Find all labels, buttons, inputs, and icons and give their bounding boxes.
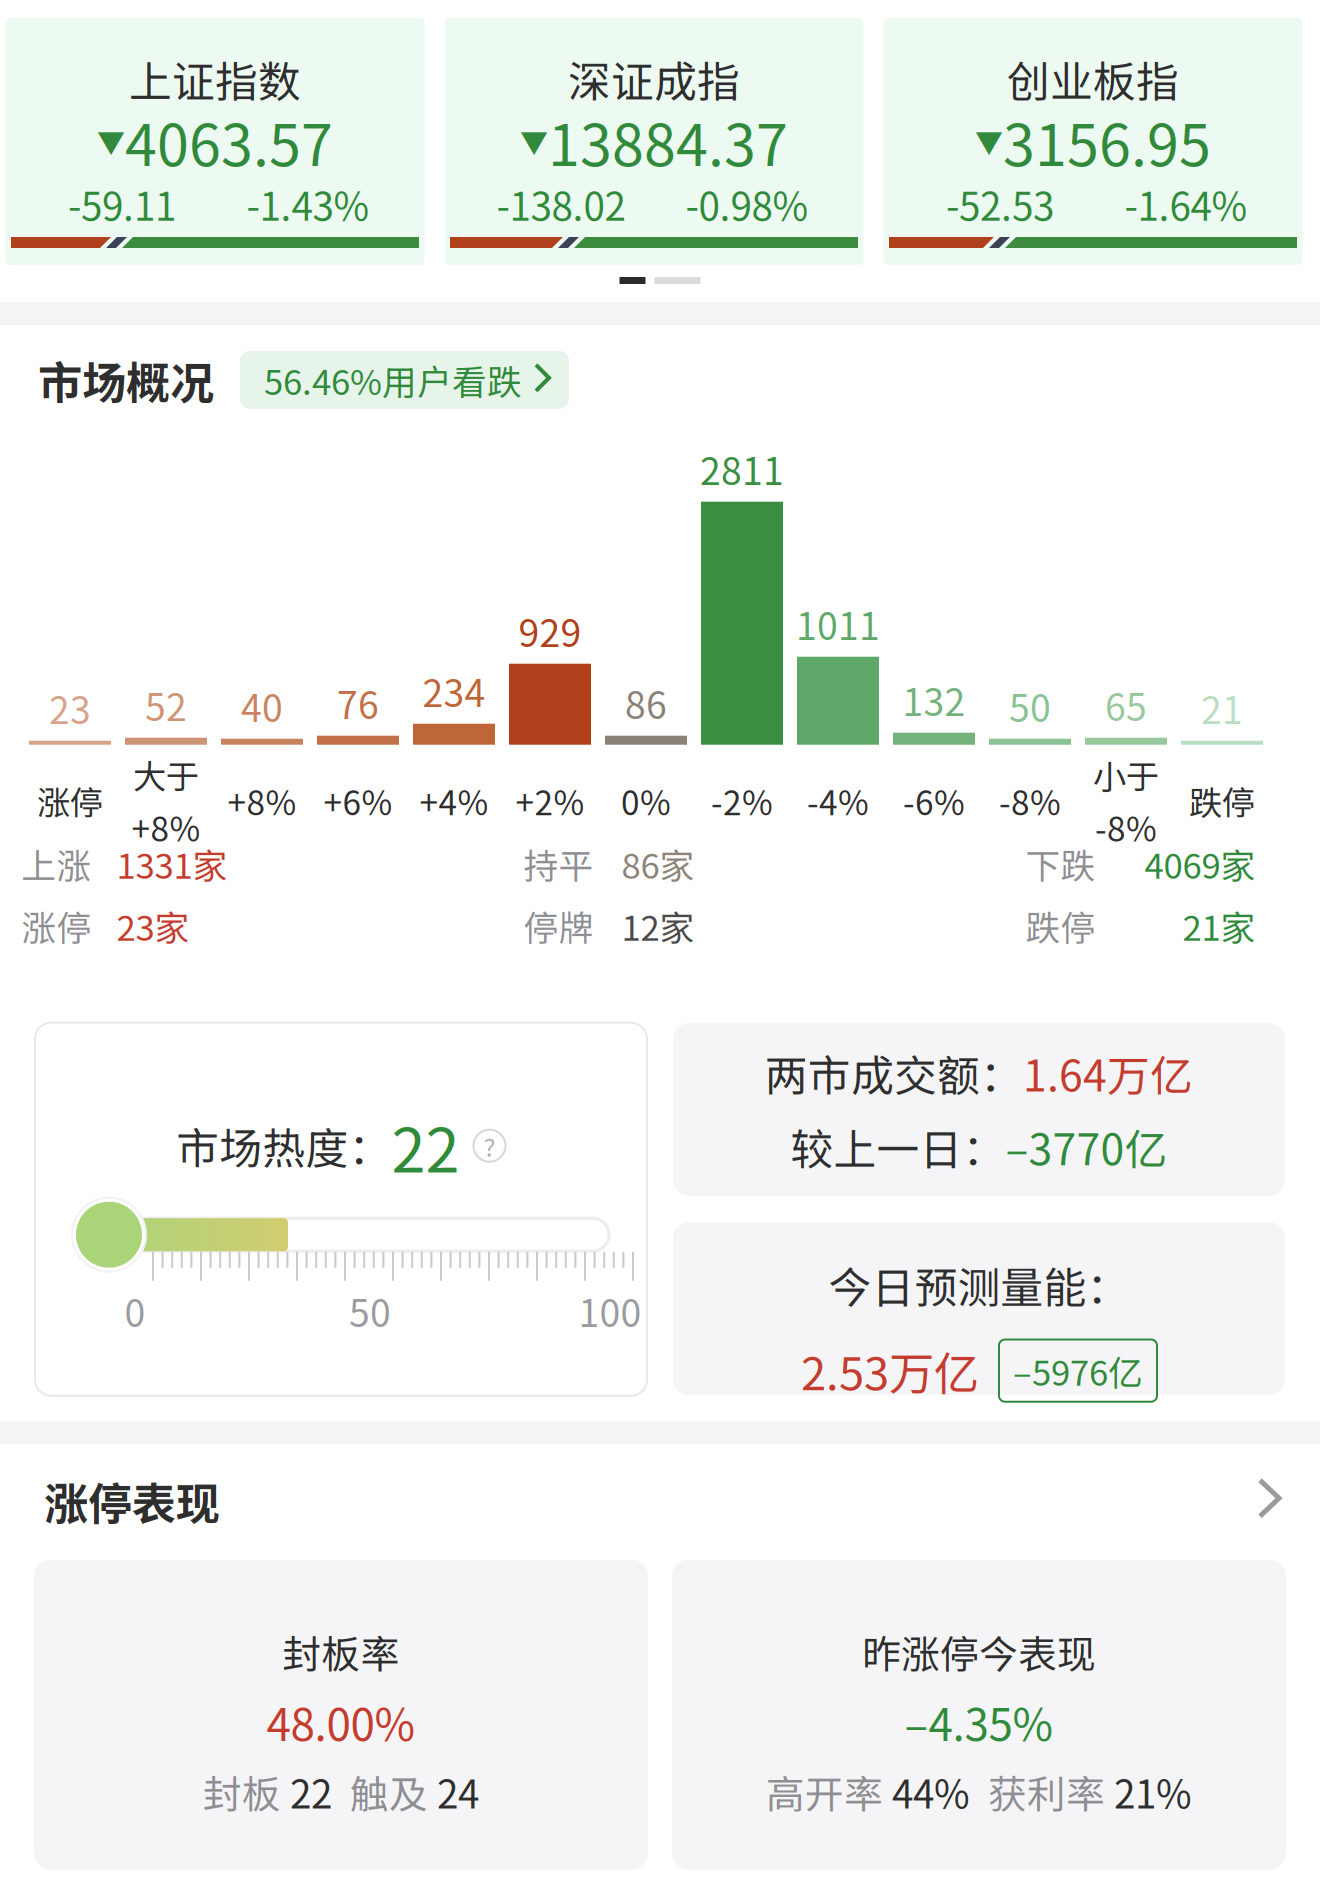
staticText: +6% (323, 777, 392, 825)
staticText: 上涨 (21, 839, 91, 889)
staticText: -4% (807, 777, 869, 825)
staticText: 涨停表现 (44, 1469, 220, 1533)
staticText: 封板率 (282, 1624, 399, 1680)
staticText: -52.53 (946, 176, 1054, 232)
staticText: 2811 (700, 442, 784, 496)
staticText: 132 (902, 673, 965, 727)
staticText: 获利率 (988, 1764, 1105, 1820)
button[interactable]: 上证指数 (5, 18, 424, 265)
staticText: 50 (1009, 679, 1051, 733)
staticText: 停牌 (523, 901, 593, 951)
staticText: 0% (621, 777, 671, 825)
staticText: 21% (1114, 1764, 1192, 1820)
staticText: 234 (422, 664, 485, 718)
staticText: –4.35% (904, 1690, 1053, 1754)
staticText: 21 (1201, 681, 1243, 735)
staticText: 持平 (523, 839, 593, 889)
staticText: ▼ (975, 121, 1003, 161)
staticText: -1.43% (246, 176, 369, 232)
staticText: 涨停 (21, 901, 91, 951)
staticText: 65 (1105, 678, 1147, 732)
staticText: 21家 (1182, 901, 1255, 951)
staticText: 深证成指 (568, 48, 740, 110)
staticText: 1.64万亿 (1023, 1042, 1193, 1104)
staticText: +8% (131, 803, 200, 851)
staticText: -6% (903, 777, 965, 825)
staticText: 50 (349, 1284, 391, 1338)
staticText: ▼ (520, 121, 548, 161)
staticText: 48.00% (266, 1690, 415, 1754)
staticText: 下跌 (1025, 839, 1095, 889)
staticText: 4063.57 (125, 99, 333, 182)
staticText: -0.98% (685, 176, 808, 232)
staticText: 12家 (621, 901, 694, 951)
staticText: 76 (337, 676, 379, 730)
staticText: 跌停 (1189, 777, 1255, 825)
staticText: 40 (241, 679, 283, 733)
staticText: 高开率 (766, 1764, 883, 1820)
button[interactable]: 56.46%用户看跌 (240, 351, 569, 409)
staticText: 创业板指 (1007, 48, 1179, 110)
staticText: 封板 (203, 1764, 281, 1820)
staticText: 929 (518, 604, 581, 658)
staticText: 两市成交额： (765, 1042, 1023, 1104)
staticText: 100 (578, 1284, 641, 1338)
staticText: 22 (290, 1764, 332, 1820)
staticText: ? (483, 1127, 495, 1164)
staticText: +2% (515, 777, 584, 825)
staticText: 触及 (350, 1764, 428, 1820)
staticText: 52 (145, 678, 187, 732)
staticText: 昨涨停今表现 (862, 1624, 1096, 1680)
staticText: 小于 (1093, 750, 1159, 799)
button[interactable]: 封板率 (34, 1560, 648, 1870)
staticText: 1331家 (116, 839, 227, 889)
button[interactable]: 市场热度说明 (473, 1130, 505, 1162)
staticText: –5976亿 (1013, 1345, 1143, 1396)
staticText: +8% (227, 777, 296, 825)
staticText: 1011 (796, 597, 880, 651)
staticText: -138.02 (496, 176, 625, 232)
staticText: 2.53万亿 (801, 1338, 979, 1403)
staticText: 3156.95 (1003, 99, 1211, 182)
staticText: 13884.37 (548, 99, 788, 182)
staticText: 市场热度： (176, 1115, 391, 1177)
staticText: 今日预测量能： (828, 1254, 1129, 1316)
staticText: -59.11 (68, 176, 176, 232)
staticText: 上证指数 (129, 48, 301, 110)
button[interactable]: 昨涨停今表现 (672, 1560, 1286, 1870)
staticText: -2% (711, 777, 773, 825)
staticText: -1.64% (1124, 176, 1247, 232)
staticText: -8% (999, 777, 1061, 825)
staticText: 23家 (116, 901, 189, 951)
staticText: 24 (437, 1764, 479, 1820)
staticText: 0 (124, 1284, 145, 1338)
staticText: 大于 (133, 750, 199, 799)
button[interactable]: 涨停表现 (0, 1451, 1320, 1551)
staticText: 较上一日： (790, 1116, 1005, 1177)
button[interactable]: 深证成指 (444, 18, 863, 265)
staticText: 市场概况 (38, 348, 214, 412)
staticText: 86 (625, 676, 667, 730)
staticText: 涨停 (37, 777, 103, 825)
staticText: 86家 (621, 839, 694, 889)
staticText: 56.46%用户看跌 (264, 355, 522, 405)
button[interactable]: 两市成交额： (673, 1023, 1285, 1196)
staticText: ▼ (97, 121, 125, 161)
staticText: -8% (1095, 803, 1157, 851)
staticText: –3770亿 (1005, 1116, 1167, 1177)
button[interactable]: 今日预测量能： (673, 1222, 1285, 1395)
staticText: 22 (391, 1101, 459, 1190)
staticText: 跌停 (1025, 901, 1095, 951)
button[interactable]: 创业板指 (883, 18, 1302, 265)
staticText: 4069家 (1144, 839, 1255, 889)
staticText: 44% (892, 1764, 970, 1820)
staticText: +4% (419, 777, 488, 825)
staticText: 23 (49, 681, 91, 735)
